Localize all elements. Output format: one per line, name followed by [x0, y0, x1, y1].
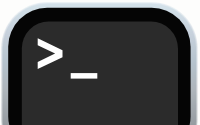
button[interactable]: Terminal app icon [0, 0, 200, 125]
